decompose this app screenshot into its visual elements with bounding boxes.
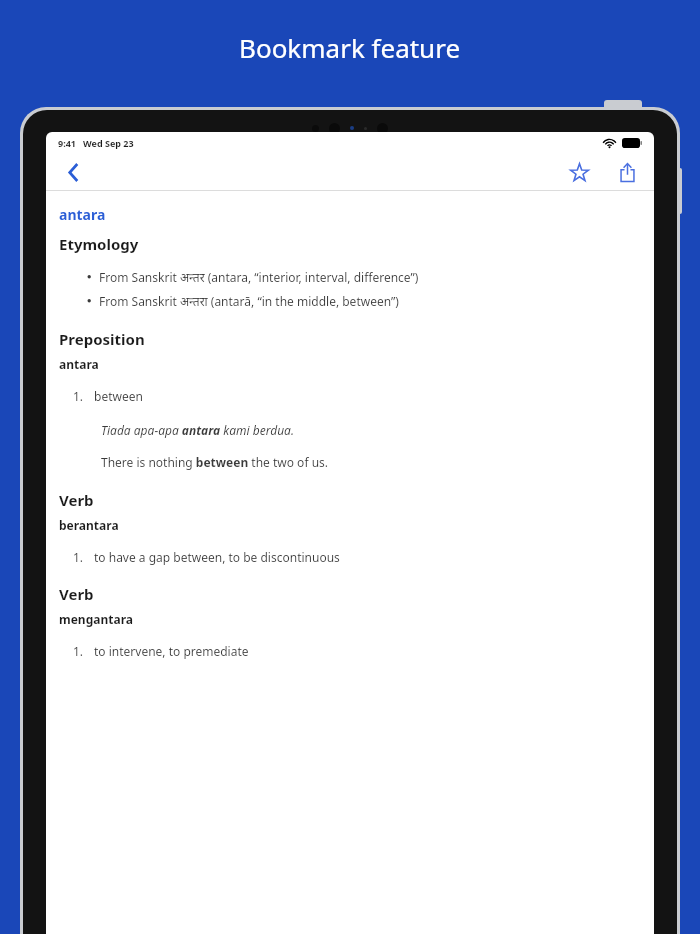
- staticText: Preposition: [59, 329, 145, 349]
- staticText: Etymology: [59, 234, 139, 254]
- staticText: Wed Sep 23: [83, 137, 134, 149]
- staticText: Tiada apa-apa antara kami berdua.: [101, 422, 294, 438]
- staticText: antara: [59, 205, 106, 224]
- staticText: There is nothing between the two of us.: [101, 454, 329, 470]
- staticText: Verb: [59, 490, 94, 510]
- staticText: 1.: [73, 549, 84, 565]
- staticText: 9:41: [58, 137, 76, 149]
- button[interactable]: Share: [610, 155, 644, 189]
- staticText: 1.: [73, 388, 84, 404]
- staticText: between: [94, 388, 143, 404]
- staticText: to have a gap between, to be discontinuo…: [94, 549, 340, 565]
- staticText: Bookmark feature: [239, 30, 461, 65]
- button[interactable]: Back: [56, 155, 90, 189]
- staticText: to intervene, to premediate: [94, 643, 249, 659]
- staticText: mengantara: [59, 611, 133, 627]
- staticText: From Sanskrit अन्तर (antara, “interior, …: [99, 269, 419, 285]
- staticText: 1.: [73, 643, 84, 659]
- staticText: berantara: [59, 517, 119, 533]
- staticText: From Sanskrit अन्तरा (antarā, “in the mi…: [99, 293, 399, 309]
- staticText: antara: [59, 356, 99, 372]
- button[interactable]: Bookmark: [562, 155, 596, 189]
- staticText: Verb: [59, 584, 94, 604]
